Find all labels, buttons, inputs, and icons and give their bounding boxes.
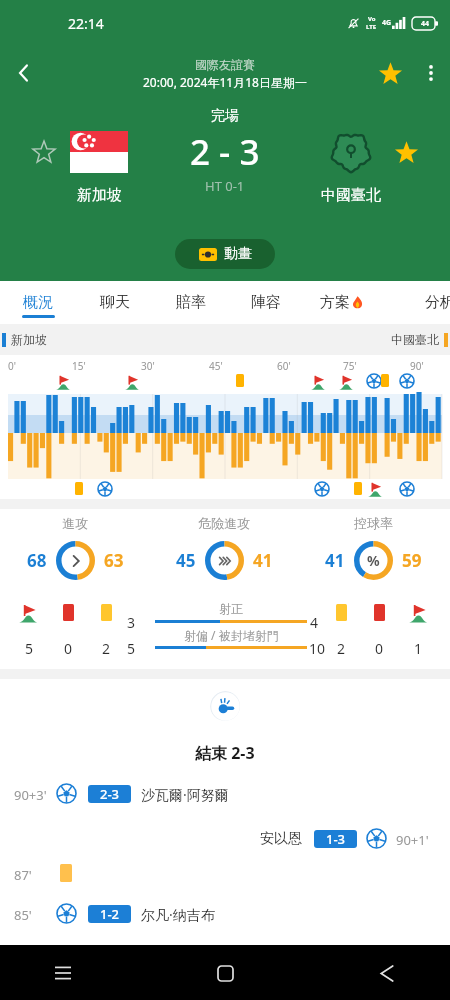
staticText: 90+3'	[14, 786, 54, 804]
staticText: 聊天	[100, 293, 130, 312]
button[interactable]: 概況	[8, 281, 68, 324]
staticText: 87'	[14, 866, 52, 884]
staticText: 控球率	[354, 515, 393, 531]
button[interactable]: 87'	[0, 861, 450, 887]
staticText: 5	[21, 639, 37, 658]
staticText: 90'	[410, 359, 424, 373]
staticText: 41	[253, 549, 273, 572]
staticText: 分析	[425, 293, 450, 312]
staticText: 45'	[209, 359, 223, 373]
staticText: 2-3	[100, 785, 120, 803]
button[interactable]: 方案	[312, 281, 372, 324]
staticText: 44	[421, 19, 430, 29]
button[interactable]: 安以恩	[0, 826, 450, 852]
staticText: HT 0-1	[205, 177, 245, 195]
staticText: 中國臺北	[321, 186, 381, 205]
button[interactable]: Favorite match	[368, 51, 412, 95]
button[interactable]: 動畫	[175, 239, 275, 269]
staticText: 0	[371, 639, 387, 658]
staticText: 15'	[72, 359, 86, 373]
staticText: 動畫	[224, 245, 252, 263]
button[interactable]: Recent apps	[40, 950, 86, 996]
button[interactable]: Back	[364, 950, 410, 996]
button[interactable]: 分析	[410, 281, 450, 324]
staticText: 尔凡·纳吉布	[141, 905, 215, 924]
staticText: 2 - 3	[190, 128, 260, 176]
staticText: 2	[333, 639, 349, 658]
staticText: 射正	[219, 601, 243, 616]
staticText: 59	[402, 549, 422, 572]
staticText: 1-2	[100, 905, 120, 923]
staticText: 30'	[141, 359, 155, 373]
staticText: 新加坡	[11, 332, 47, 347]
staticText: 國際友誼賽	[195, 57, 255, 72]
staticText: 中國臺北	[391, 332, 439, 347]
staticText: 0	[60, 639, 76, 658]
staticText: %	[367, 551, 380, 570]
staticText: 結束 2-3	[195, 742, 255, 764]
staticText: 2	[98, 639, 114, 658]
staticText: 22:14	[68, 14, 104, 33]
button[interactable]: Back	[2, 51, 46, 95]
staticText: 90+1'	[396, 831, 436, 849]
staticText: Vo	[368, 15, 376, 23]
button[interactable]: More options	[412, 54, 450, 92]
button[interactable]: 聊天	[85, 281, 145, 324]
staticText: 60'	[277, 359, 291, 373]
staticText: 3	[123, 613, 139, 632]
staticText: 賠率	[176, 293, 206, 312]
staticText: LTE	[366, 23, 377, 31]
staticText: 完場	[211, 107, 239, 125]
staticText: 沙瓦爾·阿努爾	[141, 785, 229, 804]
staticText: 安以恩	[260, 830, 302, 848]
staticText: 新加坡	[77, 186, 122, 205]
staticText: 0'	[8, 359, 16, 373]
staticText: 概況	[23, 293, 53, 312]
staticText: 危險進攻	[198, 515, 250, 531]
staticText: 41	[325, 549, 345, 572]
staticText: 10	[307, 639, 327, 658]
staticText: 5	[123, 639, 139, 658]
staticText: 4G	[382, 18, 392, 28]
staticText: 20:00, 2024年11月18日星期一	[143, 74, 307, 90]
staticText: 1	[410, 639, 426, 658]
staticText: 85'	[14, 906, 54, 924]
button[interactable]: 85'	[0, 901, 450, 927]
button[interactable]: 90+3'	[0, 781, 450, 807]
staticText: 45	[176, 549, 196, 572]
button[interactable]: Favorite Chinese Taipei	[392, 138, 420, 166]
staticText: 68	[27, 549, 47, 572]
staticText: 陣容	[251, 293, 281, 312]
staticText: 射偏 / 被封堵射門	[184, 627, 279, 643]
staticText: 63	[104, 549, 124, 572]
button[interactable]: 陣容	[236, 281, 296, 324]
staticText: 方案	[320, 293, 350, 312]
button[interactable]: 賠率	[161, 281, 221, 324]
staticText: 1-3	[326, 830, 346, 848]
button[interactable]: Favorite Singapore	[30, 138, 58, 166]
staticText: 75'	[343, 359, 357, 373]
button[interactable]: Home	[202, 950, 248, 996]
staticText: 進攻	[62, 515, 88, 531]
staticText: 4	[306, 613, 322, 632]
